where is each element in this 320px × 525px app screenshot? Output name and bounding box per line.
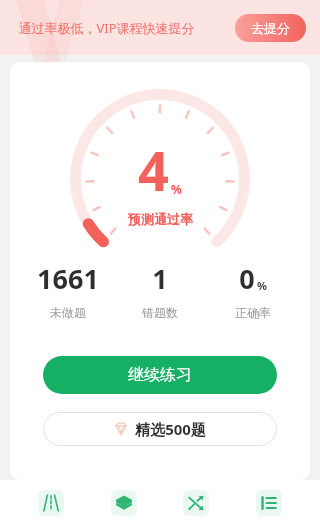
staticText: 1 (152, 260, 168, 297)
staticText: 去提分 (251, 20, 290, 36)
staticText: 0 (239, 260, 255, 297)
staticText: 通过率极低，VIP课程快速提分 (18, 19, 195, 37)
button[interactable]: Random practice (174, 481, 218, 525)
staticText: 精选500题 (135, 419, 206, 439)
staticText: 4 (138, 133, 169, 207)
button[interactable]: 去提分 (235, 14, 306, 42)
button[interactable]: Courses (102, 481, 146, 525)
staticText: 未做题 (50, 305, 86, 320)
button[interactable]: Road practice (29, 481, 73, 525)
button[interactable]: 精选500题 (43, 412, 277, 446)
staticText: 继续练习 (128, 365, 192, 385)
staticText: 1661 (37, 260, 99, 297)
staticText: 正确率 (235, 305, 271, 320)
button[interactable]: Question list (247, 481, 291, 525)
staticText: % (257, 278, 267, 293)
staticText: 预测通过率 (128, 211, 193, 227)
button[interactable]: 继续练习 (43, 356, 277, 394)
staticText: 错题数 (142, 305, 178, 320)
staticText: % (171, 181, 182, 197)
